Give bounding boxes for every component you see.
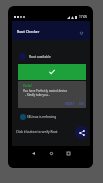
button[interactable]: Back <box>28 148 38 158</box>
button[interactable]: OK <box>79 102 84 106</box>
button[interactable]: Recents <box>63 148 73 158</box>
staticText: Root Checker <box>17 29 40 34</box>
button[interactable]: Share <box>75 126 88 139</box>
staticText: Hola! <box>23 83 32 88</box>
staticText: You have Perfectly rooted device - Kindl… <box>23 89 68 97</box>
staticText: SELinux is enforcing <box>27 115 57 119</box>
button[interactable]: MORE <box>65 102 75 106</box>
staticText: Root available <box>29 54 51 58</box>
staticText: 17:05 <box>79 15 88 19</box>
button[interactable]: Root verified <box>18 64 86 80</box>
button[interactable]: Security info <box>77 29 85 37</box>
staticText: Click it button to verify Root <box>16 130 58 134</box>
button[interactable]: Home <box>46 148 56 158</box>
